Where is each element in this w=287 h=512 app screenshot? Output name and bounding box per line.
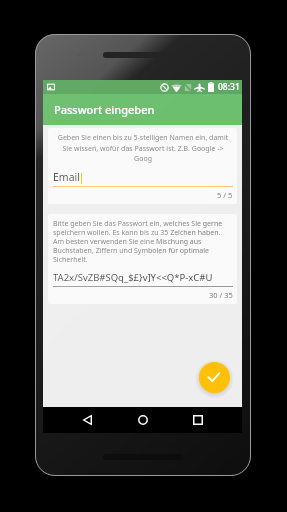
button[interactable]: Geben Sie einen bis zu 5-stelligen Namen… (48, 128, 237, 204)
button[interactable]: Zurück (73, 407, 102, 433)
button[interactable]: Bestaetigen (199, 362, 230, 393)
staticText: Email (53, 170, 80, 184)
button[interactable]: Bitte geben Sie das Passwort ein, welche… (48, 214, 237, 304)
staticText: Passwort eingeben (54, 102, 155, 117)
staticText: Bitte geben Sie das Passwort ein, welche… (53, 219, 233, 264)
button[interactable]: Startbildschirm (128, 407, 157, 433)
staticText: 5 / 5 (217, 190, 233, 200)
staticText: TA2x/SvZB#SQq_$£}v]Y<<Q*P-xC#U (53, 271, 213, 284)
staticText: Geben Sie einen bis zu 5-stelligen Namen… (53, 133, 233, 163)
staticText: 30 / 35 (209, 290, 233, 300)
button[interactable]: Letzte Apps (183, 407, 212, 433)
button[interactable]: Passwort eingeben (43, 94, 242, 125)
staticText: 08:31 (218, 81, 240, 93)
